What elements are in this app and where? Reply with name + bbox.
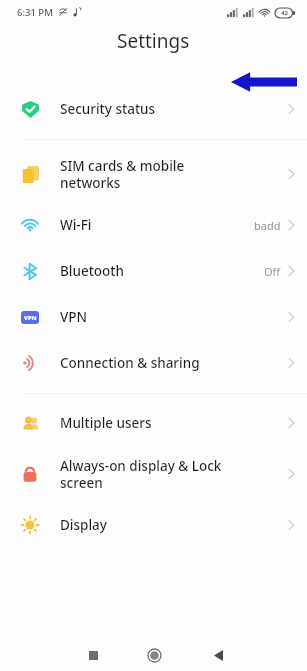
staticText: VPN (60, 308, 288, 326)
button[interactable]: Display (0, 502, 307, 548)
staticText: SIM cards & mobile networks (60, 157, 288, 192)
staticText: Settings (117, 28, 190, 54)
button[interactable]: Bluetooth (0, 248, 307, 294)
staticText: Security status (60, 100, 288, 118)
staticText: VPN (24, 314, 37, 322)
button[interactable]: Wi-Fi (0, 202, 307, 248)
button[interactable]: Security status (0, 86, 307, 132)
staticText: Multiple users (60, 414, 288, 432)
staticText: 6:31 PM (17, 6, 53, 19)
staticText: 42 (281, 9, 288, 17)
staticText: badd (254, 218, 281, 233)
button[interactable]: VPN (0, 294, 307, 340)
button[interactable]: Connection & sharing (0, 340, 307, 386)
staticText: Always-on display & Lock screen (60, 457, 288, 492)
staticText: Display (60, 516, 288, 534)
staticText: Off (264, 264, 281, 279)
button[interactable]: Always-on display & Lock screen (0, 446, 307, 502)
button[interactable]: Home (140, 641, 168, 669)
staticText: Wi-Fi (60, 216, 254, 234)
button[interactable]: Recents (80, 642, 106, 668)
button[interactable]: Back (205, 642, 231, 668)
staticText: Bluetooth (60, 262, 264, 280)
other: Pointer to Connection & sharing (231, 71, 297, 93)
staticText: Connection & sharing (60, 354, 288, 372)
button[interactable]: SIM cards & mobile networks (0, 146, 307, 202)
button[interactable]: Multiple users (0, 400, 307, 446)
